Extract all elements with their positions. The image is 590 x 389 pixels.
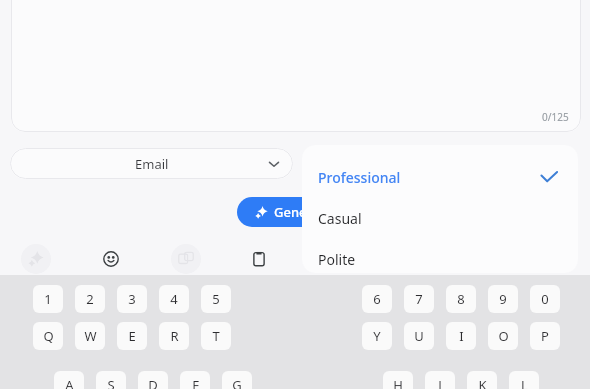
button[interactable]: S <box>96 371 126 389</box>
button[interactable]: Clipboard <box>244 244 274 274</box>
staticText: G <box>232 376 242 389</box>
button[interactable]: U <box>404 322 434 350</box>
button[interactable]: 5 <box>201 285 231 313</box>
button[interactable]: 8 <box>446 285 476 313</box>
button[interactable]: E <box>117 322 147 350</box>
button[interactable]: 0 <box>530 285 560 313</box>
staticText: 2 <box>86 290 94 308</box>
staticText: 8 <box>457 290 465 308</box>
button[interactable]: K <box>467 371 497 389</box>
button[interactable]: Translate <box>171 244 201 274</box>
staticText: P <box>541 327 549 345</box>
staticText: 3 <box>128 290 136 308</box>
button[interactable]: Professional <box>302 157 578 197</box>
button[interactable]: D <box>138 371 168 389</box>
staticText: E <box>128 327 136 345</box>
staticText: Professional <box>318 168 401 187</box>
button[interactable]: R <box>159 322 189 350</box>
staticText: T <box>212 327 220 345</box>
staticText: 0/125 <box>542 110 569 124</box>
button[interactable]: J <box>425 371 455 389</box>
button[interactable]: H <box>383 371 413 389</box>
button[interactable]: Q <box>33 322 63 350</box>
button[interactable]: 6 <box>362 285 392 313</box>
staticText: 9 <box>499 290 507 308</box>
staticText: I <box>459 327 464 345</box>
button[interactable]: Y <box>362 322 392 350</box>
button[interactable]: Generate <box>237 197 357 227</box>
button[interactable]: 0/125 <box>11 0 581 132</box>
button[interactable]: 2 <box>75 285 105 313</box>
staticText: Polite <box>318 250 356 269</box>
button[interactable]: I <box>446 322 476 350</box>
button[interactable]: G <box>222 371 252 389</box>
staticText: A <box>65 376 74 389</box>
staticText: Casual <box>318 209 362 228</box>
button[interactable]: Writing assist <box>21 244 51 274</box>
staticText: 4 <box>170 290 178 308</box>
staticText: F <box>192 376 199 389</box>
button[interactable]: 9 <box>488 285 518 313</box>
staticText: O <box>498 327 509 345</box>
button[interactable]: 7 <box>404 285 434 313</box>
button[interactable]: Casual <box>302 198 578 238</box>
staticText: L <box>521 376 528 389</box>
staticText: 0 <box>541 290 549 308</box>
button[interactable]: 1 <box>33 285 63 313</box>
staticText: 1 <box>44 290 52 308</box>
button[interactable]: 3 <box>117 285 147 313</box>
staticText: W <box>84 327 97 345</box>
staticText: Email <box>135 155 169 173</box>
button[interactable]: 4 <box>159 285 189 313</box>
staticText: H <box>393 376 403 389</box>
staticText: Generate <box>274 203 332 221</box>
button[interactable]: Email <box>10 148 293 179</box>
staticText: J <box>438 376 442 389</box>
button[interactable]: A <box>54 371 84 389</box>
staticText: 5 <box>212 290 220 308</box>
staticText: 7 <box>415 290 423 308</box>
button[interactable]: O <box>488 322 518 350</box>
button[interactable]: T <box>201 322 231 350</box>
staticText: K <box>478 376 487 389</box>
staticText: R <box>170 327 179 345</box>
staticText: S <box>107 376 115 389</box>
staticText: 6 <box>373 290 381 308</box>
staticText: U <box>414 327 424 345</box>
button[interactable]: L <box>509 371 539 389</box>
button[interactable]: P <box>530 322 560 350</box>
button[interactable]: W <box>75 322 105 350</box>
button[interactable]: Polite <box>302 239 578 273</box>
button[interactable]: Emoji <box>96 244 126 274</box>
staticText: Q <box>43 327 54 345</box>
button[interactable]: F <box>180 371 210 389</box>
staticText: D <box>148 376 158 389</box>
staticText: Y <box>373 327 381 345</box>
